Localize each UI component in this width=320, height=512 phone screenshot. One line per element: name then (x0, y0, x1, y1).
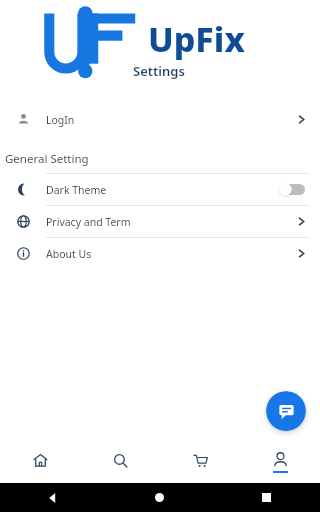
button[interactable]: Dark Theme (0, 174, 320, 205)
button[interactable]: Dark theme toggle (279, 183, 305, 196)
button[interactable]: Profile (240, 442, 320, 483)
staticText: Settings (133, 62, 185, 80)
staticText: General Setting (5, 151, 89, 167)
button[interactable]: Search (80, 442, 160, 483)
staticText: Privacy and Term (46, 215, 297, 229)
staticText: UpFix (148, 16, 245, 62)
button[interactable]: Chat support (266, 391, 306, 431)
staticText: LogIn (46, 113, 297, 127)
staticText: Dark Theme (46, 183, 279, 197)
button[interactable]: Home (0, 442, 80, 483)
button[interactable]: Cart (160, 442, 240, 483)
staticText: About Us (46, 247, 297, 261)
button[interactable]: LogIn (0, 104, 320, 135)
button[interactable]: About Us (0, 238, 320, 269)
button[interactable]: Privacy and Term (0, 206, 320, 237)
